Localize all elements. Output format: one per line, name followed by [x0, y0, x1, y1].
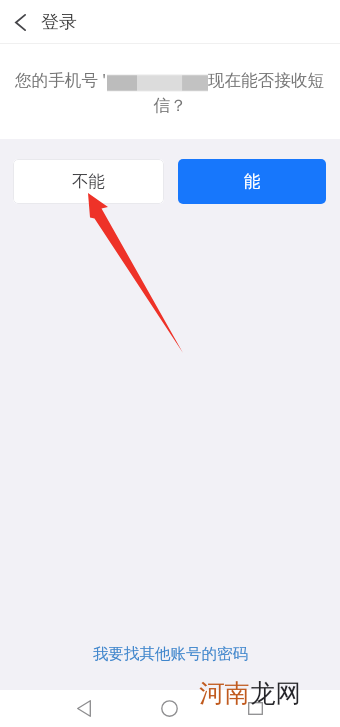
staticText: 龙网 [250, 677, 301, 709]
staticText: 您的手机号 ' [15, 68, 107, 91]
button[interactable]: Back [0, 0, 41, 44]
staticText: 能 [244, 171, 261, 192]
button[interactable]: Home [146, 690, 193, 727]
staticText: 信？ [153, 95, 187, 116]
button[interactable]: 我要找其他账号的密码 [0, 638, 340, 670]
button[interactable]: Recent apps [232, 690, 279, 727]
staticText: 河南 [199, 677, 250, 709]
staticText: 现在能否接收短 [208, 70, 325, 91]
button[interactable]: Back [60, 690, 107, 727]
staticText: 我要找其他账号的密码 [93, 644, 248, 664]
staticText: 不能 [72, 171, 105, 192]
staticText: 登录 [41, 11, 77, 34]
button[interactable]: 能 [178, 159, 326, 204]
button[interactable]: 不能 [13, 159, 164, 204]
